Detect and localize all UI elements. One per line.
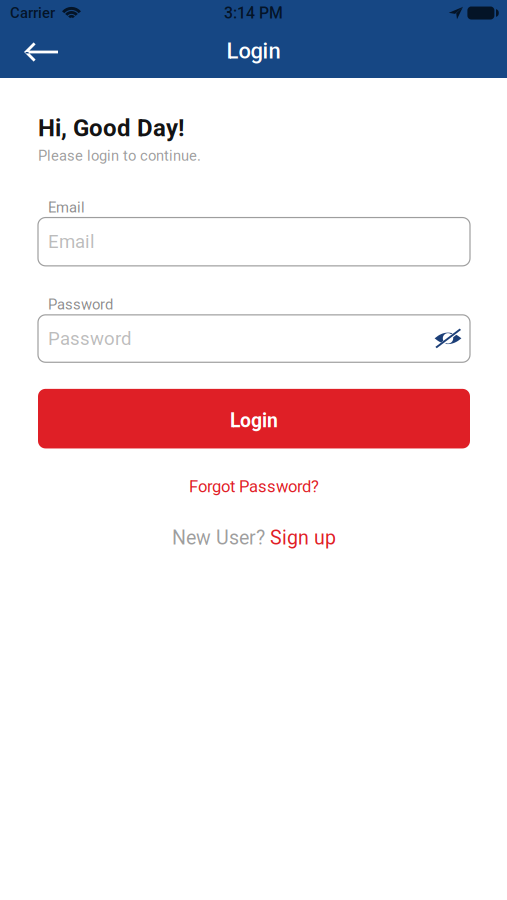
button[interactable]: Back — [0, 26, 74, 78]
staticText: Sign up — [270, 526, 336, 549]
staticText: Password — [48, 296, 113, 313]
staticText: 3:14 PM — [224, 4, 283, 22]
staticText: Carrier — [10, 4, 55, 22]
button[interactable]: Forgot Password? — [38, 477, 470, 496]
button[interactable]: Login — [38, 389, 470, 448]
staticText: Forgot Password? — [189, 477, 319, 496]
button[interactable]: Show password — [434, 329, 462, 348]
button[interactable]: New User? — [38, 526, 470, 549]
staticText: Password — [48, 328, 131, 349]
staticText: Please login to continue. — [38, 147, 201, 164]
staticText: Email — [48, 199, 85, 216]
staticText: Login — [226, 38, 280, 64]
staticText: New User? — [172, 526, 270, 549]
staticText: Login — [230, 409, 278, 432]
staticText: Hi, Good Day! — [38, 114, 184, 142]
staticText: Email — [48, 231, 95, 253]
